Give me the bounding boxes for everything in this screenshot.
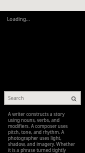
other: Search — [70, 95, 77, 102]
staticText: Search — [8, 95, 70, 102]
staticText: A writer constructs a story using nouns,… — [8, 111, 77, 153]
button[interactable]: Search — [4, 91, 81, 105]
staticText: Loading... — [7, 16, 31, 23]
